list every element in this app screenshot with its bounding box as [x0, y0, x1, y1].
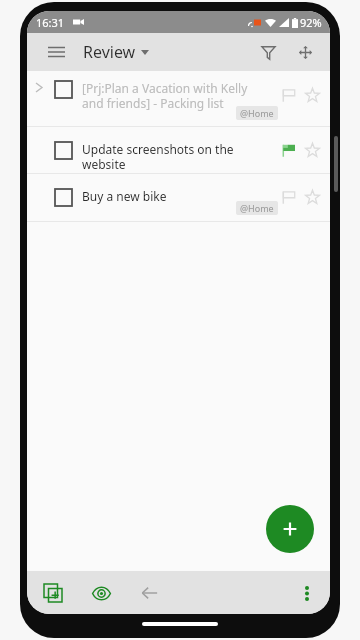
button[interactable]: Flag	[278, 85, 298, 105]
staticText: Review	[83, 41, 136, 63]
staticText: Update screenshots on the website	[82, 141, 248, 172]
button[interactable]: Back	[131, 575, 167, 611]
button[interactable]: Complete task	[27, 71, 330, 126]
button[interactable]: Complete task	[27, 174, 330, 221]
button[interactable]: Menu	[39, 35, 73, 69]
button[interactable]: Filter	[251, 35, 285, 69]
button[interactable]: Move	[288, 35, 322, 69]
staticText: 16:31	[36, 15, 65, 30]
button[interactable]: Add task	[266, 505, 314, 553]
button[interactable]: Star	[302, 140, 322, 160]
button[interactable]: Complete task	[52, 139, 74, 161]
button[interactable]: Star	[302, 187, 322, 207]
staticText: [Prj:Plan a Vacation with Kelly and frie…	[82, 80, 248, 111]
staticText: @Home	[240, 202, 274, 214]
button[interactable]: Complete task	[52, 186, 74, 208]
staticText: 92%	[300, 15, 322, 30]
button[interactable]: Flag	[278, 187, 298, 207]
staticText: Buy a new bike	[82, 188, 167, 204]
button[interactable]: Flag	[278, 140, 298, 160]
button[interactable]: @Home	[240, 202, 274, 214]
button[interactable]: Review	[83, 41, 149, 63]
button[interactable]: @Home	[240, 107, 274, 119]
button[interactable]: New task	[35, 575, 71, 611]
staticText: @Home	[240, 107, 274, 119]
button[interactable]: Complete task	[27, 127, 330, 173]
button[interactable]: Complete task	[52, 78, 74, 100]
button[interactable]: More options	[290, 576, 324, 610]
button[interactable]: Star	[302, 85, 322, 105]
button[interactable]: Preview	[83, 575, 119, 611]
